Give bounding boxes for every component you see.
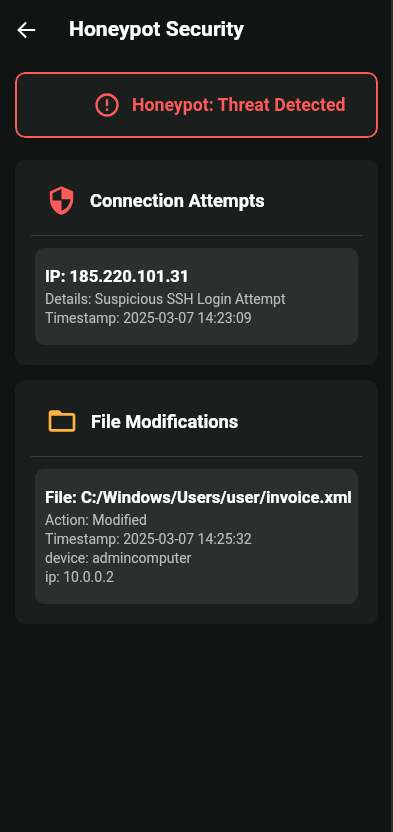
staticText: File Modifications	[91, 411, 239, 432]
staticText: Connection Attempts	[90, 190, 265, 211]
staticText: Timestamp: 2025-03-07 14:23:09	[45, 310, 252, 326]
staticText: IP: 185.220.101.31	[45, 267, 190, 287]
staticText: Honeypot Security	[69, 16, 244, 41]
staticText: Details: Suspicious SSH Login Attempt	[45, 291, 286, 307]
staticText: device: admincomputer	[45, 550, 192, 566]
staticText: Honeypot: Threat Detected	[132, 95, 346, 116]
staticText: ip: 10.0.0.2	[45, 569, 114, 585]
button[interactable]: File Modifications	[15, 380, 378, 624]
button[interactable]: Back	[11, 14, 42, 45]
button[interactable]: Honeypot: Threat Detected	[15, 72, 378, 138]
staticText: Action: Modified	[45, 512, 147, 528]
button[interactable]: Connection Attempts	[15, 160, 378, 365]
staticText: File: C:/Windows/Users/user/invoice.xml	[45, 488, 352, 508]
staticText: Timestamp: 2025-03-07 14:25:32	[45, 531, 252, 547]
